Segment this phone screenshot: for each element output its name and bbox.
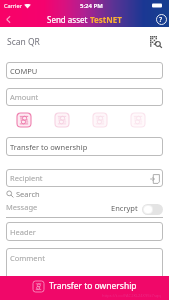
button[interactable]: Transfer to ownership [0, 276, 169, 300]
button[interactable]: Back [0, 12, 16, 27]
button[interactable]: Asset option 1 [16, 112, 32, 128]
button[interactable]: Asset option 4 [130, 112, 146, 128]
staticText: Transfer to ownership [10, 142, 88, 152]
button[interactable]: Transfer to ownership [6, 137, 163, 156]
staticText: Search [16, 189, 40, 199]
staticText: Scan QR [7, 36, 40, 48]
staticText: Encrypt [111, 203, 138, 213]
staticText: Send asset [47, 14, 90, 25]
staticText: ? [159, 15, 163, 25]
button[interactable]: Encrypt toggle [142, 204, 163, 215]
button[interactable]: Search [6, 189, 40, 199]
staticText: TestNET [90, 14, 122, 25]
staticText: Carrier [4, 2, 22, 9]
button[interactable]: Header [6, 222, 163, 241]
button[interactable]: Help [153, 12, 169, 27]
button[interactable]: Amount [6, 88, 163, 106]
button[interactable]: Comment [6, 248, 163, 282]
staticText: 5:24 PM [80, 2, 103, 10]
button[interactable]: COMPU [6, 62, 163, 79]
staticText: Header [10, 227, 36, 237]
staticText: Message [6, 202, 38, 212]
staticText: COMPU [10, 66, 38, 76]
staticText: Amount [10, 92, 39, 102]
staticText: Transfer to ownership [49, 280, 137, 292]
button[interactable]: Scan QR [7, 33, 162, 50]
staticText: Comment [10, 253, 45, 263]
staticText: Recipient [10, 173, 43, 183]
button[interactable]: Pick contact [149, 173, 160, 184]
button[interactable]: Asset option 2 [54, 112, 70, 128]
button[interactable]: Asset option 3 [92, 112, 108, 128]
button[interactable]: Recipient [6, 169, 163, 187]
staticText: https://t.co/FAC2KL24X95k7sqq [102, 293, 161, 298]
